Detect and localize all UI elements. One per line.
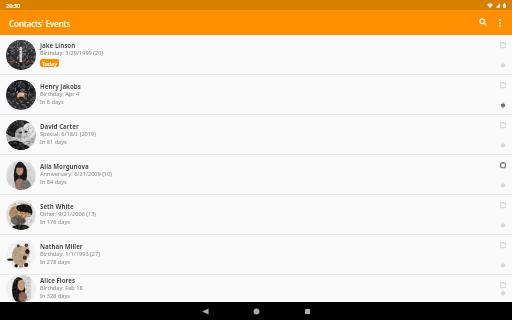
staticText: Anniversary: 6/21/2009 (10) — [40, 170, 112, 178]
staticText: In 84 days — [40, 178, 67, 186]
button[interactable]: Reminder — [497, 139, 508, 150]
staticText: Birthday: Apr 4 — [40, 90, 80, 98]
button[interactable]: Note — [497, 239, 508, 250]
staticText: Henry Jakobs — [40, 82, 81, 90]
button[interactable]: Jake Linson — [0, 35, 512, 74]
button[interactable]: Alice Flores — [0, 275, 512, 302]
button[interactable]: Reminder — [497, 259, 508, 270]
button[interactable]: Back — [180, 302, 231, 320]
button[interactable]: Note — [497, 279, 508, 290]
staticText: In 278 days — [40, 258, 70, 266]
button[interactable]: Alla Morgunova — [0, 155, 512, 194]
button[interactable]: David Carter — [0, 115, 512, 154]
button[interactable]: Seth White — [0, 195, 512, 234]
staticText: Contacts' Events — [9, 18, 71, 29]
staticText: 20:30 — [6, 2, 21, 9]
staticText: In 6 days — [40, 98, 64, 106]
staticText: Seth White — [40, 202, 74, 210]
button[interactable]: More options — [489, 10, 511, 35]
button[interactable]: Note — [497, 79, 508, 90]
button[interactable]: Nathan Miller — [0, 235, 512, 274]
button[interactable]: Recent apps — [282, 302, 333, 320]
staticText: Other: 9/21/2006 (13) — [40, 210, 97, 218]
staticText: In 81 days — [40, 138, 67, 146]
staticText: Special: 6/18/1 (2019) — [40, 130, 96, 138]
staticText: Jake Linson — [40, 41, 76, 49]
staticText: David Carter — [40, 122, 79, 130]
staticText: Alice Flores — [40, 276, 76, 284]
staticText: Birthday: Feb 18 — [40, 284, 83, 292]
button[interactable]: Reminder — [497, 287, 508, 298]
button[interactable]: Home — [231, 302, 282, 320]
button[interactable]: Note — [497, 199, 508, 210]
staticText: In 176 days — [40, 218, 70, 226]
staticText: Alla Morgunova — [40, 162, 89, 170]
button[interactable]: Reminder — [497, 99, 508, 110]
button[interactable]: Note — [497, 39, 508, 50]
button[interactable]: Reminder — [497, 59, 508, 70]
staticText: In 328 days — [40, 292, 70, 300]
staticText: Today — [42, 60, 57, 67]
staticText: Nathan Miller — [40, 242, 83, 250]
button[interactable]: Note — [497, 119, 508, 130]
button[interactable]: Henry Jakobs — [0, 75, 512, 114]
button[interactable]: Search — [471, 10, 495, 35]
button[interactable]: Reminder — [497, 179, 508, 190]
staticText: Birthday: 1/1/1993 (27) — [40, 250, 100, 258]
button[interactable]: Note — [497, 159, 508, 170]
staticText: Birthday: 3/29/1999 (20) — [40, 49, 104, 57]
button[interactable]: Reminder — [497, 219, 508, 230]
